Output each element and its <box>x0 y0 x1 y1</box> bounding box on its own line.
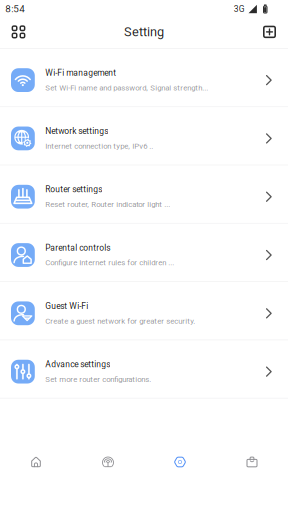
button[interactable]: Parental controls <box>0 224 288 282</box>
button[interactable]: Apps <box>0 17 36 47</box>
staticText: Set Wi-Fi name and password, Signal stre… <box>45 83 208 92</box>
button[interactable]: Add <box>251 17 287 47</box>
button[interactable]: Guest Wi-Fi <box>0 282 288 340</box>
button[interactable]: Wi-Fi management <box>0 49 288 107</box>
button[interactable]: Advance settings <box>0 340 288 399</box>
button[interactable]: Network <box>72 438 144 486</box>
staticText: Parental controls <box>45 243 110 253</box>
button[interactable]: Home <box>0 438 72 486</box>
staticText: Network settings <box>45 126 108 136</box>
staticText: Guest Wi-Fi <box>45 301 88 311</box>
staticText: Advance settings <box>45 359 110 369</box>
staticText: Reset router, Router indicator light ... <box>45 200 170 209</box>
button[interactable]: Router settings <box>0 165 288 224</box>
staticText: Wi-Fi management <box>45 68 116 78</box>
button[interactable]: Tools <box>216 438 288 486</box>
staticText: 3G <box>234 4 245 14</box>
staticText: Setting <box>124 24 164 39</box>
staticText: Internet connection type, IPv6 .. <box>45 141 153 151</box>
staticText: Set more router configurations. <box>45 375 151 384</box>
staticText: Router settings <box>45 184 102 194</box>
staticText: Configure Internet rules for children ..… <box>45 258 174 267</box>
staticText: 8:54 <box>5 3 25 15</box>
staticText: Create a guest network for greater secur… <box>45 316 195 325</box>
button[interactable]: Settings <box>144 438 216 486</box>
button[interactable]: Network settings <box>0 107 288 165</box>
